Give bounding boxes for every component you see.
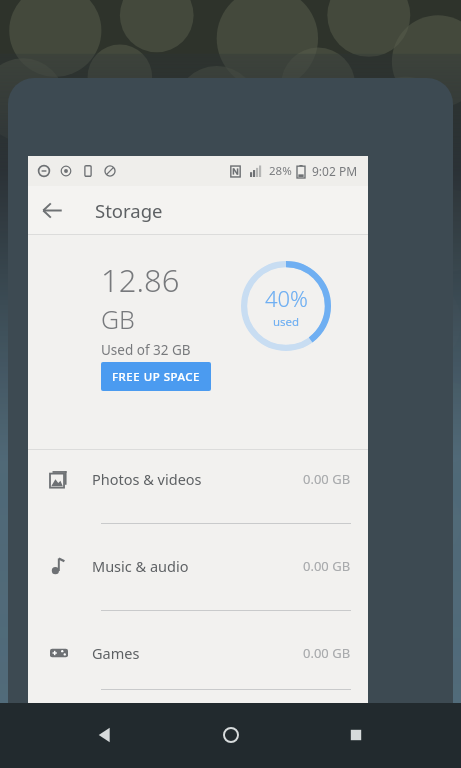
staticText: GB xyxy=(101,302,135,336)
button[interactable]: Recents xyxy=(336,715,376,755)
staticText: 9:02 PM xyxy=(312,163,358,179)
staticText: 0.00 GB xyxy=(303,557,351,575)
staticText: Photos & videos xyxy=(92,469,202,489)
staticText: Games xyxy=(92,643,140,663)
button[interactable]: Home xyxy=(211,715,251,755)
staticText: Used of 32 GB xyxy=(101,341,191,359)
button[interactable]: Games xyxy=(28,624,368,703)
staticText: FREE UP SPACE xyxy=(112,369,200,385)
staticText: 0.00 GB xyxy=(303,644,351,662)
button[interactable]: FREE UP SPACE xyxy=(101,362,211,391)
button[interactable]: Back xyxy=(28,186,76,234)
staticText: Storage xyxy=(95,198,163,223)
staticText: 12.86 xyxy=(101,259,180,301)
staticText: 40% xyxy=(265,283,308,313)
staticText: 0.00 GB xyxy=(303,470,351,488)
button[interactable]: Photos & videos xyxy=(28,450,368,537)
button[interactable]: Back xyxy=(85,715,125,755)
staticText: Music & audio xyxy=(92,556,189,576)
staticText: used xyxy=(273,314,300,330)
button[interactable]: Music & audio xyxy=(28,537,368,624)
staticText: 28% xyxy=(269,163,292,179)
